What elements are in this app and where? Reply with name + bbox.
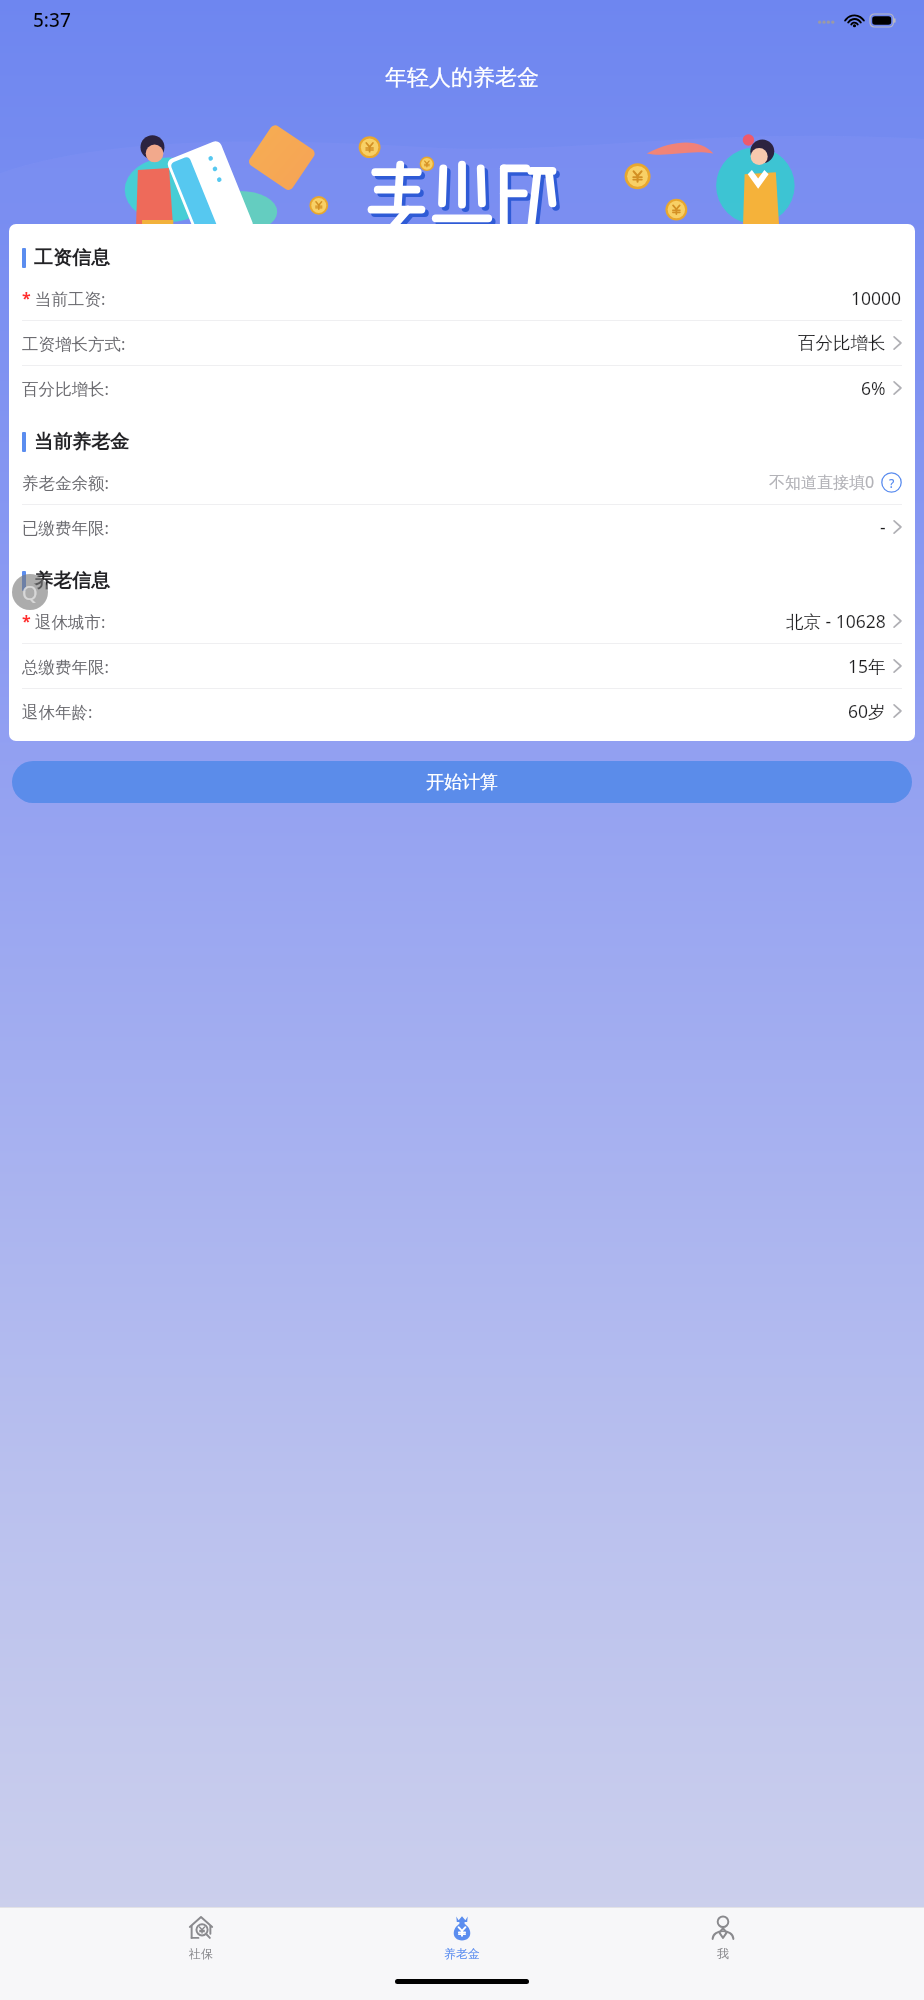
button[interactable]: 开始计算 xyxy=(12,761,912,803)
button[interactable]: 帮助 xyxy=(881,472,902,493)
staticText: 我 xyxy=(717,1946,729,1961)
staticText: 养老金 xyxy=(444,1946,480,1961)
staticText: 当前养老金 xyxy=(34,430,129,454)
staticText: 当前工资: xyxy=(35,287,106,310)
staticText: 5:37 xyxy=(33,7,71,33)
button[interactable]: 养老金 xyxy=(402,1915,522,1961)
button[interactable]: 已缴费年限: xyxy=(22,505,902,549)
staticText: * xyxy=(22,610,31,632)
staticText: 退休城市: xyxy=(35,610,106,633)
staticText: 60岁 xyxy=(848,699,886,723)
button[interactable]: * xyxy=(22,276,902,320)
staticText: 北京 - 10628 xyxy=(786,609,886,633)
staticText: ? xyxy=(889,475,895,491)
button[interactable]: 我 xyxy=(663,1915,783,1961)
staticText: 15年 xyxy=(848,654,886,678)
staticText: 开始计算 xyxy=(426,771,498,794)
staticText: 社保 xyxy=(189,1946,213,1961)
staticText: 不知道直接填0 xyxy=(769,471,875,493)
staticText: 工资信息 xyxy=(34,246,110,270)
staticText: 百分比增长: xyxy=(22,377,109,400)
button[interactable]: 工资增长方式: xyxy=(22,321,902,365)
staticText: - xyxy=(880,515,886,539)
button[interactable]: 退休年龄: xyxy=(22,689,902,733)
button[interactable]: 总缴费年限: xyxy=(22,644,902,688)
staticText: 工资增长方式: xyxy=(22,332,126,355)
staticText: 年轻人的养老金 xyxy=(385,64,539,92)
staticText: Q xyxy=(22,579,38,606)
staticText: 总缴费年限: xyxy=(22,655,109,678)
button[interactable]: 养老金余额: xyxy=(22,460,902,504)
staticText: * xyxy=(22,287,31,309)
button[interactable]: 百分比增长: xyxy=(22,366,902,410)
staticText: 养老信息 xyxy=(34,569,110,593)
button[interactable]: 社保 xyxy=(141,1915,261,1961)
staticText: 退休年龄: xyxy=(22,700,93,723)
staticText: 已缴费年限: xyxy=(22,516,109,539)
staticText: 养老金余额: xyxy=(22,471,109,494)
staticText: 10000 xyxy=(851,286,902,310)
staticText: 百分比增长 xyxy=(798,332,886,354)
staticText: 6% xyxy=(861,376,886,400)
button[interactable]: * xyxy=(22,599,902,643)
